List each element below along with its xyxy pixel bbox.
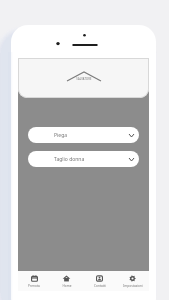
button[interactable]: Prenota [18,271,50,291]
staticText: Contatti [94,284,106,288]
button[interactable]: Piega [28,127,139,143]
button[interactable]: Contatti [83,271,116,291]
button[interactable]: Taglio donna [28,151,139,167]
staticText: Home [62,284,72,288]
staticText: Piega [54,132,68,139]
staticText: Taglio donna [54,156,85,163]
button[interactable]: Home [50,271,83,291]
staticText: SALVATORE [76,77,92,81]
staticText: Impostazioni [123,284,143,288]
button[interactable]: Impostazioni [116,271,149,291]
staticText: Prenota [28,284,40,288]
